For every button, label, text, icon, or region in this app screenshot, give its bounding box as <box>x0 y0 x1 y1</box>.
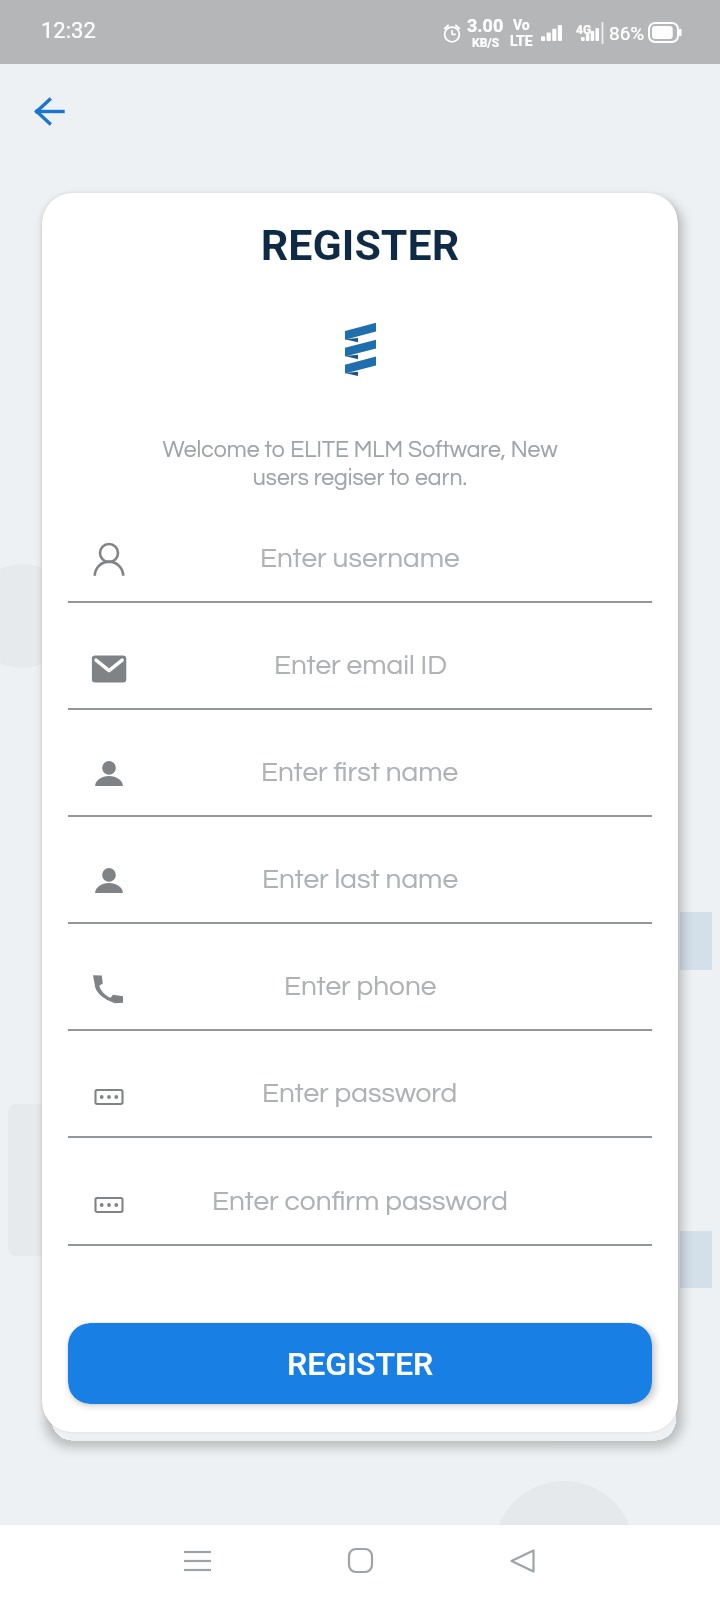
button[interactable]: Enter phone <box>68 924 652 1031</box>
staticText: 86% <box>609 22 645 44</box>
staticText: REGISTER <box>287 1345 434 1383</box>
button[interactable]: Enter first name <box>68 710 652 817</box>
staticText: REGISTER <box>42 220 678 270</box>
staticText: 3.00 <box>467 15 504 36</box>
button[interactable]: Enter last name <box>68 817 652 924</box>
staticText: Vo <box>513 17 530 33</box>
button[interactable]: Enter username <box>68 496 652 603</box>
button[interactable]: Back <box>482 1523 562 1598</box>
staticText: Enter confirm password <box>212 1187 508 1216</box>
staticText: Enter first name <box>261 758 459 787</box>
button[interactable]: Recent apps <box>157 1523 237 1598</box>
staticText: Enter username <box>260 544 460 573</box>
button[interactable]: REGISTER <box>68 1323 652 1404</box>
staticText: LTE <box>510 33 533 49</box>
staticText: KB/S <box>472 36 500 50</box>
staticText: Enter phone <box>284 972 437 1001</box>
staticText: Enter last name <box>262 865 459 894</box>
staticText: Enter password <box>262 1079 458 1108</box>
button[interactable]: Enter password <box>68 1031 652 1138</box>
button[interactable]: Home <box>320 1523 400 1598</box>
staticText: 12:32 <box>41 18 96 44</box>
button[interactable]: Back <box>19 81 79 141</box>
staticText: 4G <box>576 23 592 37</box>
staticText: Enter email ID <box>274 651 447 680</box>
staticText: Welcome to ELITE MLM Software, New users… <box>42 438 678 490</box>
button[interactable]: Enter confirm password <box>68 1139 652 1246</box>
button[interactable]: Enter email ID <box>68 603 652 710</box>
